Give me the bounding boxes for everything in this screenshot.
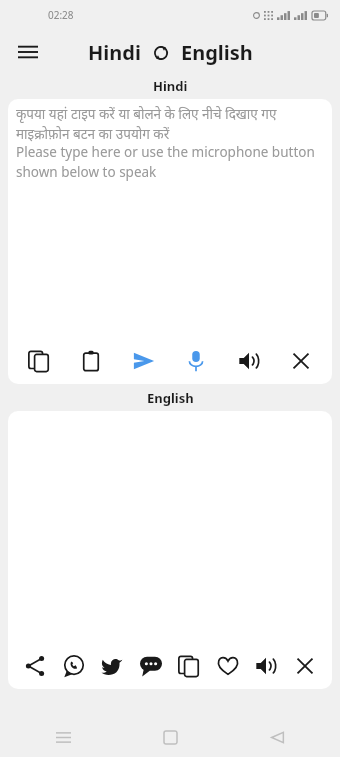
button[interactable]: Share (18, 649, 52, 683)
staticText: 02:28 (48, 8, 74, 22)
button[interactable]: कृपया यहां टाइप करें या बोलने के लिए नीच… (8, 99, 332, 338)
button[interactable]: Hindi (88, 39, 141, 66)
button[interactable]: Speak (179, 344, 213, 378)
button[interactable]: Paste (74, 344, 108, 378)
button[interactable]: Back (260, 720, 294, 754)
button[interactable]: Clear (284, 344, 318, 378)
staticText: Hindi (153, 77, 188, 95)
button[interactable]: Clear (288, 649, 322, 683)
staticText: Please type here or use the microphone b… (16, 143, 324, 181)
button[interactable]: WhatsApp (57, 649, 91, 683)
button[interactable]: SMS (134, 649, 168, 683)
button[interactable]: Home (153, 720, 187, 754)
button[interactable]: Copy (172, 649, 206, 683)
staticText: English (147, 389, 194, 407)
button[interactable]: Twitter (95, 649, 129, 683)
staticText: कृपया यहां टाइप करें या बोलने के लिए नीच… (16, 105, 324, 143)
button[interactable]: Translate (127, 344, 161, 378)
button[interactable]: English (181, 39, 253, 66)
button[interactable]: Swap languages (148, 40, 174, 66)
button[interactable]: Listen (232, 344, 266, 378)
button[interactable]: Menu (8, 32, 48, 72)
button[interactable]: Favourite (211, 649, 245, 683)
button[interactable]: Listen (249, 649, 283, 683)
button[interactable]: Recents (46, 720, 80, 754)
button[interactable]: Copy (22, 344, 56, 378)
